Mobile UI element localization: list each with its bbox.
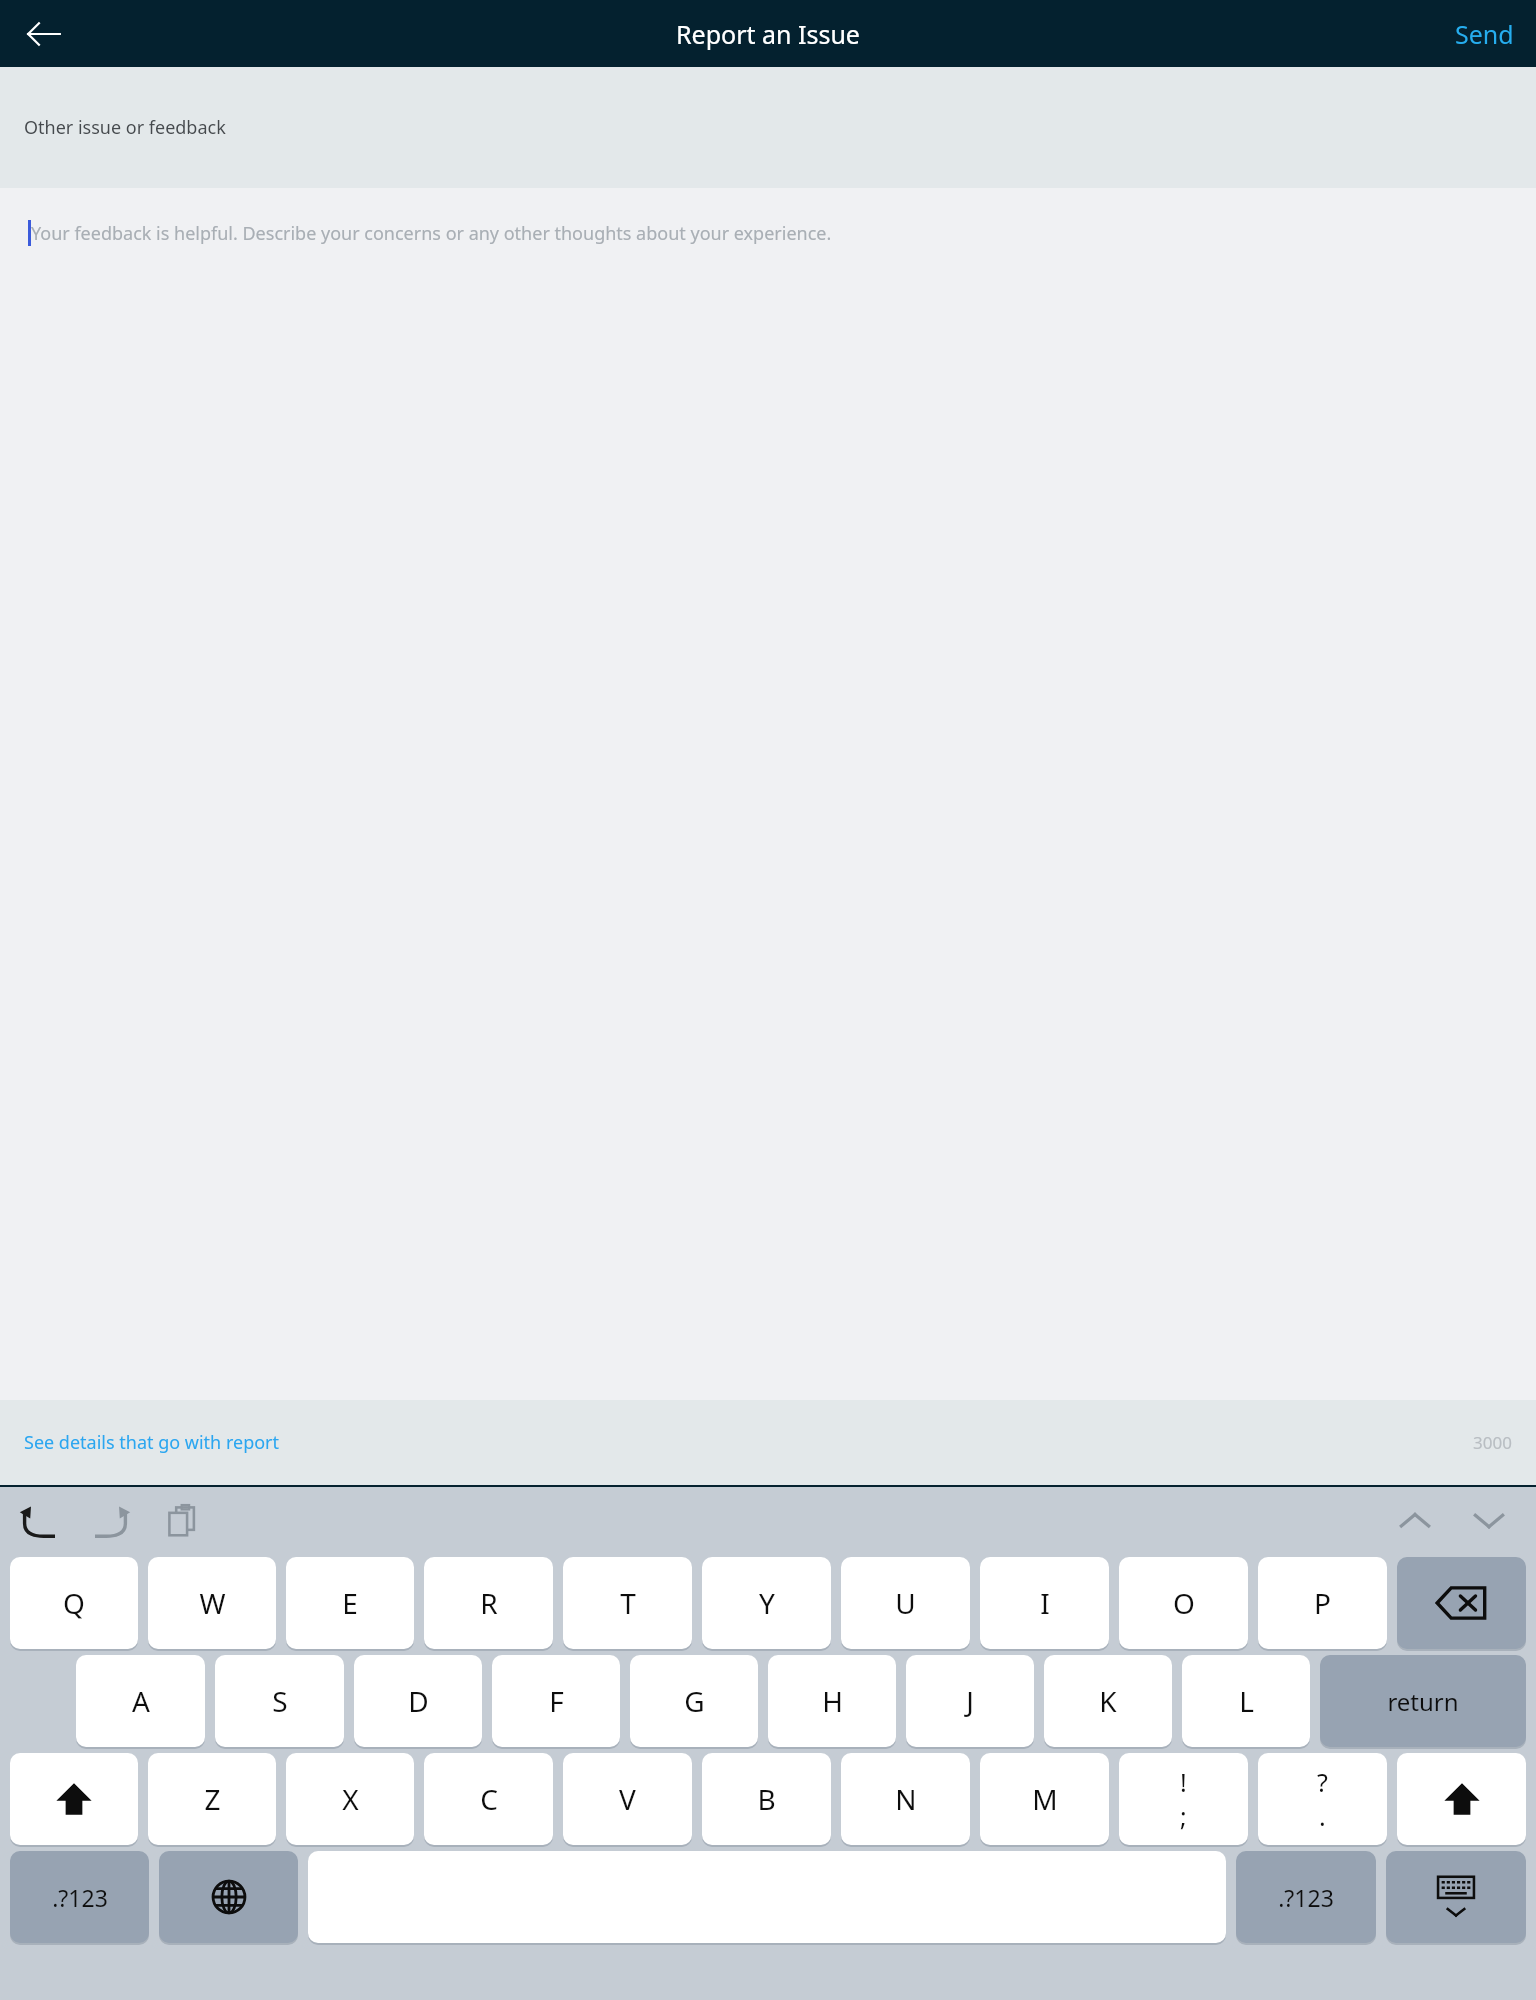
button[interactable]: Question mark and period bbox=[1258, 1753, 1387, 1845]
staticText: Send bbox=[1455, 17, 1514, 51]
button[interactable]: Your feedback is helpful. Describe your … bbox=[28, 220, 1536, 246]
button[interactable]: See details that go with report bbox=[0, 1422, 288, 1463]
staticText: N bbox=[895, 1780, 917, 1818]
button[interactable]: Change keyboard language bbox=[159, 1851, 298, 1943]
button[interactable]: Z bbox=[148, 1753, 276, 1845]
button[interactable]: Previous field bbox=[1386, 1492, 1444, 1550]
staticText: . bbox=[1319, 1799, 1326, 1833]
button[interactable]: J bbox=[906, 1655, 1034, 1747]
button[interactable]: I bbox=[980, 1557, 1109, 1649]
staticText: ; bbox=[1180, 1799, 1187, 1833]
button[interactable]: Next field bbox=[1460, 1492, 1518, 1550]
staticText: ? bbox=[1317, 1765, 1328, 1799]
staticText: X bbox=[342, 1780, 359, 1818]
button[interactable]: F bbox=[492, 1655, 620, 1747]
staticText: Q bbox=[63, 1584, 85, 1622]
staticText: See details that go with report bbox=[24, 1430, 280, 1455]
button[interactable]: Backspace bbox=[1397, 1557, 1526, 1649]
staticText: E bbox=[342, 1584, 358, 1622]
staticText: Your feedback is helpful. Describe your … bbox=[31, 221, 832, 246]
staticText: T bbox=[620, 1584, 636, 1622]
button[interactable]: B bbox=[702, 1753, 831, 1845]
staticText: P bbox=[1314, 1584, 1331, 1622]
button[interactable]: .?123 bbox=[10, 1851, 149, 1943]
button[interactable]: Shift bbox=[10, 1753, 138, 1845]
staticText: C bbox=[480, 1780, 498, 1818]
button[interactable]: Y bbox=[702, 1557, 831, 1649]
staticText: K bbox=[1099, 1682, 1117, 1720]
staticText: I bbox=[1040, 1584, 1050, 1622]
staticText: J bbox=[966, 1682, 974, 1720]
staticText: D bbox=[408, 1682, 429, 1720]
button[interactable]: Q bbox=[10, 1557, 138, 1649]
button[interactable]: W bbox=[148, 1557, 276, 1649]
button[interactable]: return bbox=[1320, 1655, 1526, 1747]
button[interactable]: Send bbox=[1433, 7, 1536, 61]
button[interactable]: T bbox=[563, 1557, 692, 1649]
staticText: Y bbox=[759, 1584, 775, 1622]
button[interactable]: Hide keyboard bbox=[1386, 1851, 1526, 1943]
staticText: O bbox=[1173, 1584, 1195, 1622]
button[interactable]: C bbox=[424, 1753, 553, 1845]
staticText: S bbox=[272, 1682, 288, 1720]
staticText: return bbox=[1387, 1685, 1459, 1718]
staticText: ! bbox=[1180, 1765, 1187, 1799]
staticText: V bbox=[619, 1780, 636, 1818]
button[interactable]: Exclamation and semicolon bbox=[1119, 1753, 1248, 1845]
staticText: W bbox=[199, 1584, 226, 1622]
button[interactable]: Undo bbox=[10, 1492, 68, 1550]
staticText: .?123 bbox=[52, 1882, 108, 1913]
button[interactable]: Shift bbox=[1397, 1753, 1526, 1845]
button[interactable]: K bbox=[1044, 1655, 1172, 1747]
staticText: L bbox=[1239, 1682, 1254, 1720]
button[interactable]: Back bbox=[10, 0, 78, 67]
staticText: .?123 bbox=[1278, 1882, 1334, 1913]
button[interactable]: H bbox=[768, 1655, 896, 1747]
button[interactable]: E bbox=[286, 1557, 414, 1649]
button[interactable]: G bbox=[630, 1655, 758, 1747]
button[interactable]: .?123 bbox=[1236, 1851, 1376, 1943]
staticText: B bbox=[757, 1780, 776, 1818]
staticText: U bbox=[895, 1584, 916, 1622]
button[interactable]: A bbox=[76, 1655, 205, 1747]
button[interactable]: X bbox=[286, 1753, 414, 1845]
button[interactable]: U bbox=[841, 1557, 970, 1649]
button[interactable]: N bbox=[841, 1753, 970, 1845]
button[interactable]: M bbox=[980, 1753, 1109, 1845]
staticText: A bbox=[132, 1682, 150, 1720]
staticText: Other issue or feedback bbox=[24, 115, 226, 140]
button[interactable]: S bbox=[215, 1655, 344, 1747]
staticText: F bbox=[549, 1682, 564, 1720]
staticText: H bbox=[822, 1682, 843, 1720]
button[interactable]: Paste bbox=[154, 1492, 212, 1550]
button[interactable]: D bbox=[354, 1655, 482, 1747]
button[interactable]: P bbox=[1258, 1557, 1387, 1649]
staticText: Report an Issue bbox=[676, 17, 860, 51]
button[interactable]: O bbox=[1119, 1557, 1248, 1649]
staticText: R bbox=[480, 1584, 498, 1622]
button[interactable]: L bbox=[1182, 1655, 1310, 1747]
staticText: Z bbox=[204, 1780, 221, 1818]
staticText: M bbox=[1032, 1780, 1058, 1818]
staticText: G bbox=[684, 1682, 705, 1720]
button[interactable]: V bbox=[563, 1753, 692, 1845]
button[interactable]: R bbox=[424, 1557, 553, 1649]
staticText: 3000 bbox=[1473, 1431, 1512, 1454]
button[interactable]: Redo bbox=[82, 1492, 140, 1550]
